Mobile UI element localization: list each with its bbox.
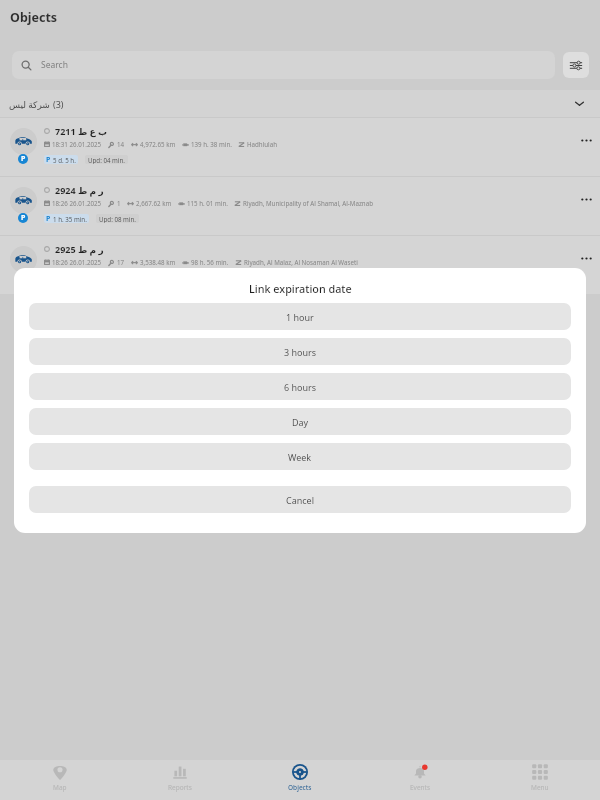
staticText: P [46, 214, 51, 223]
button[interactable]: P [0, 118, 600, 176]
button[interactable]: Objects [240, 760, 360, 800]
staticText: Week [288, 451, 312, 463]
staticText: 115 h. 01 min. [187, 199, 228, 207]
button[interactable]: More options [575, 247, 597, 269]
staticText: 139 h. 38 min. [191, 140, 232, 148]
staticText: 1 h. 35 min. [53, 215, 87, 223]
staticText: Events [410, 783, 431, 792]
button[interactable]: Search [12, 51, 555, 79]
staticText: 2,667.62 km [136, 199, 172, 207]
staticText: P [21, 154, 26, 164]
staticText: Cancel [286, 494, 315, 506]
staticText: Reports [168, 783, 192, 792]
staticText: P [46, 155, 51, 164]
staticText: 17 [117, 258, 125, 266]
staticText: Riyadh, Municipality of Al Shamal, Al-Ma… [243, 199, 373, 207]
button[interactable]: 3 hours [29, 338, 571, 365]
staticText: Objects [10, 9, 58, 26]
staticText: 1 [117, 199, 121, 207]
staticText: 18:26 26.01.2025 [52, 199, 102, 207]
staticText: P [21, 213, 26, 223]
button[interactable]: 6 hours [29, 373, 571, 400]
staticText: Link expiration date [249, 281, 352, 296]
staticText: 1 hour [286, 311, 314, 323]
button[interactable]: Week [29, 443, 571, 470]
button[interactable]: Day [29, 408, 571, 435]
button[interactable]: P [0, 236, 600, 294]
button[interactable]: Events [360, 760, 480, 800]
staticText: 3 hours [284, 346, 317, 358]
staticText: 14 [117, 140, 125, 148]
staticText: 98 h. 56 min. [191, 258, 229, 266]
staticText: 18:31 26.01.2025 [52, 140, 102, 148]
staticText: Day [292, 416, 309, 428]
staticText: 7211 ب ع ط [55, 125, 108, 137]
staticText: 2924 ر م ط [55, 184, 104, 196]
button[interactable]: Filters [563, 52, 589, 78]
staticText: 4,972.65 km [140, 140, 176, 148]
staticText: Upd: 08 min. [99, 215, 136, 223]
staticText: Hadhlulah [247, 140, 277, 148]
button[interactable]: Cancel [29, 486, 571, 513]
staticText: Map [53, 783, 67, 792]
staticText: 2925 ر م ط [55, 243, 104, 255]
staticText: Upd: 04 min. [88, 156, 125, 164]
staticText: Riyadh, Al Malaz, Al Nosaman Al Waseti [244, 258, 358, 266]
button[interactable]: Map [0, 760, 120, 800]
staticText: شركة ليس [9, 98, 50, 110]
staticText: Menu [531, 783, 549, 792]
button[interactable]: 1 hour [29, 303, 571, 330]
staticText: Search [41, 59, 68, 71]
button[interactable]: Reports [120, 760, 240, 800]
staticText: 3,538.48 km [140, 258, 176, 266]
button[interactable]: More options [575, 129, 597, 151]
button[interactable]: P [0, 177, 600, 235]
staticText: 18:26 26.01.2025 [52, 258, 102, 266]
button[interactable]: شركة ليس [9, 90, 586, 117]
button[interactable]: More options [575, 188, 597, 210]
staticText: Objects [288, 783, 312, 792]
staticText: 6 hours [284, 381, 317, 393]
staticText: 5 d. 5 h. [53, 156, 76, 164]
button[interactable]: Menu [480, 760, 600, 800]
staticText: (3) [53, 98, 64, 110]
